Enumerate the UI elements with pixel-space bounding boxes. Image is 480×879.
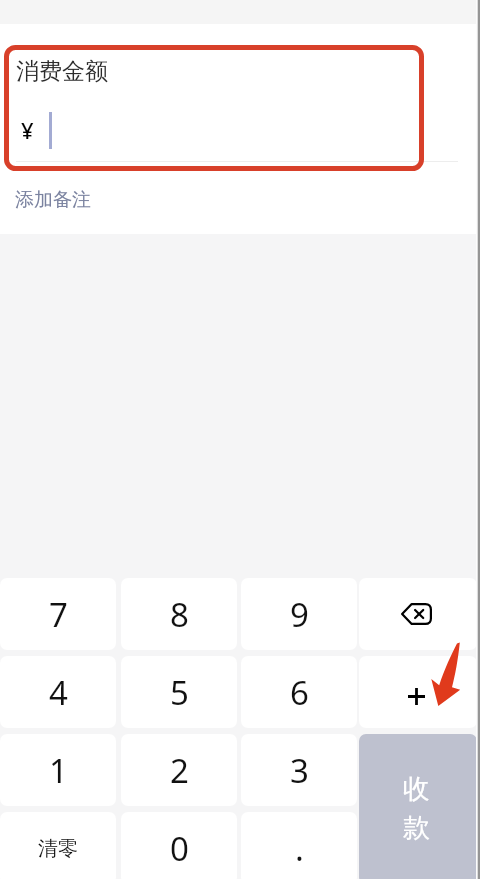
button[interactable]: Backspace [359, 578, 477, 650]
button[interactable]: 7 [0, 578, 116, 650]
button[interactable]: Plus [359, 656, 477, 728]
staticText: 收 款 [403, 772, 430, 845]
button[interactable]: 消费金额输入框 [0, 24, 480, 162]
button[interactable]: 8 [121, 578, 237, 650]
staticText: 消费金额 [16, 57, 108, 86]
button[interactable]: 9 [241, 578, 357, 650]
button[interactable]: 收 款 [359, 734, 477, 879]
button[interactable]: 6 [241, 656, 357, 728]
staticText: 7 [49, 592, 68, 637]
staticText: 0 [170, 826, 189, 871]
button[interactable]: 1 [0, 734, 116, 806]
staticText: 2 [170, 748, 189, 793]
button[interactable]: 5 [121, 656, 237, 728]
button[interactable]: 添加备注 [15, 188, 91, 212]
button[interactable]: 2 [121, 734, 237, 806]
staticText: 清零 [38, 836, 78, 861]
button[interactable]: 0 [121, 812, 237, 879]
staticText: ¥ [21, 115, 34, 145]
button[interactable]: 4 [0, 656, 116, 728]
staticText: 6 [290, 670, 309, 715]
staticText: 1 [49, 748, 68, 793]
button[interactable]: 3 [241, 734, 357, 806]
staticText: . [295, 826, 304, 871]
staticText: 5 [170, 670, 189, 715]
staticText: 4 [49, 670, 68, 715]
staticText: 9 [290, 592, 309, 637]
button[interactable]: 清零 [0, 812, 116, 879]
staticText: 3 [290, 748, 309, 793]
button[interactable]: . [241, 812, 357, 879]
staticText: 8 [170, 592, 189, 637]
